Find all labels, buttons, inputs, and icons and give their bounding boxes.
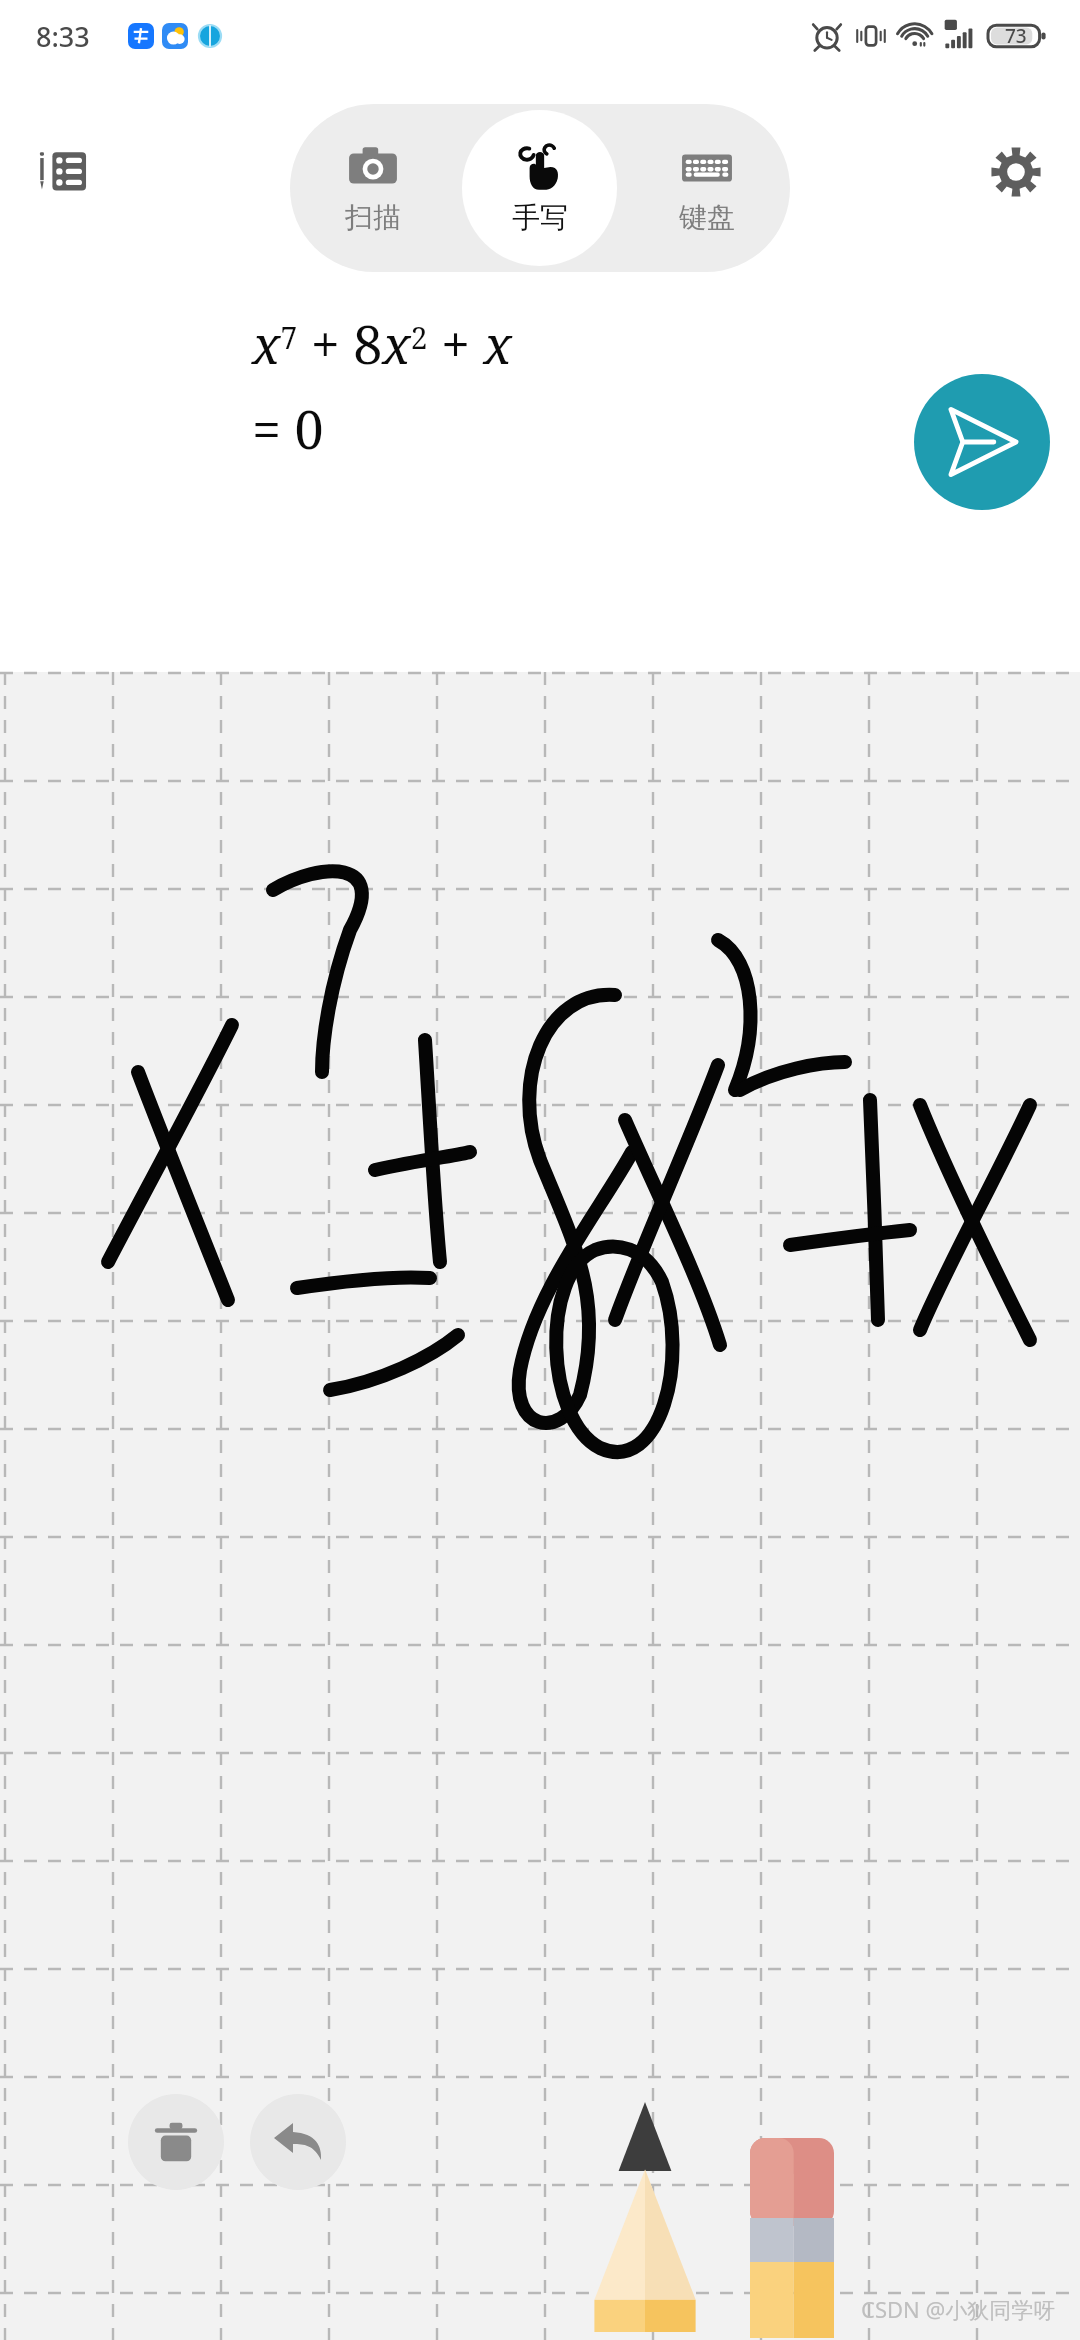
button[interactable]: Eraser tool <box>750 2138 834 2338</box>
button[interactable]: 扫描 <box>296 110 450 266</box>
staticText: = 0 <box>252 393 324 464</box>
staticText: CSDN @小狄同学呀 <box>861 2294 1056 2324</box>
staticText: 扫描 <box>345 200 401 235</box>
button[interactable]: Pen tool <box>590 2102 700 2332</box>
staticText: x7 + 8x2 + x <box>252 308 513 379</box>
staticText: 手写 <box>512 200 568 235</box>
staticText: 73 <box>1005 23 1027 49</box>
button[interactable]: 手写 <box>462 110 617 266</box>
button[interactable]: Send <box>914 374 1050 510</box>
button[interactable]: Settings <box>978 134 1054 210</box>
button[interactable]: Clear <box>128 2094 224 2190</box>
staticText: 8:33 <box>36 18 90 55</box>
staticText: 键盘 <box>679 200 735 235</box>
button[interactable]: Undo <box>250 2094 346 2190</box>
button[interactable]: 键盘 <box>629 110 784 266</box>
button[interactable]: History <box>26 134 102 210</box>
